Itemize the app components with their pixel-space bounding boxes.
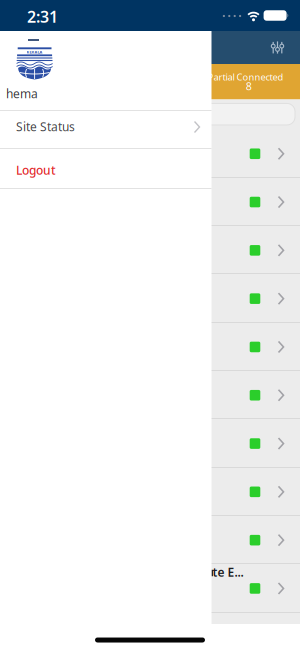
button[interactable]: Site Status [0,108,211,145]
button[interactable]: Site [0,371,300,419]
staticText: hema [6,85,38,101]
button[interactable]: Site [0,323,300,371]
button[interactable]: Logout [0,150,211,189]
button[interactable]: Site [0,419,300,468]
staticText: KERALA [27,49,43,55]
button[interactable]: Site [0,564,300,613]
staticText: Site Status [16,118,75,134]
button[interactable]: Filter [265,36,289,60]
staticText: te E... [212,564,243,580]
button[interactable]: Site [0,130,300,178]
button[interactable]: Search [5,103,295,125]
staticText: Partial Connected [207,71,283,83]
button[interactable]: Site [0,274,300,323]
button[interactable]: Site [0,178,300,226]
button[interactable]: Site [0,226,300,274]
staticText: 8 [246,79,252,93]
button[interactable]: Site [0,468,300,516]
button[interactable]: Site [0,516,300,564]
staticText: Logout [16,162,56,178]
staticText: 2:31 [27,6,58,27]
